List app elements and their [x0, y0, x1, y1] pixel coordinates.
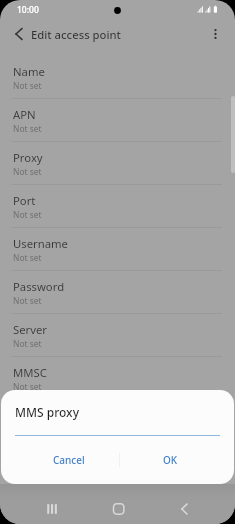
staticText: Cancel: [53, 453, 85, 467]
staticText: MMS proxy: [15, 404, 79, 420]
staticText: Not set: [13, 338, 42, 349]
staticText: Not set: [13, 166, 42, 177]
staticText: MMSC: [13, 365, 47, 380]
button[interactable]: Server: [0, 314, 235, 357]
button[interactable]: MMSC: [0, 357, 235, 400]
staticText: Not set: [13, 123, 42, 134]
staticText: Port: [13, 193, 36, 208]
staticText: Not set: [13, 295, 42, 306]
staticText: Not set: [13, 252, 42, 263]
button[interactable]: Port: [0, 185, 235, 228]
staticText: Not set: [13, 209, 42, 220]
button[interactable]: More options: [197, 20, 235, 48]
staticText: Password: [13, 279, 65, 294]
staticText: Name: [13, 64, 45, 79]
staticText: Proxy: [13, 150, 43, 165]
button[interactable]: Cancel: [18, 445, 119, 475]
button[interactable]: Password: [0, 271, 235, 314]
button[interactable]: Name: [0, 56, 235, 99]
button[interactable]: OK: [120, 445, 221, 475]
button[interactable]: Back: [167, 494, 203, 524]
staticText: Not set: [13, 80, 42, 91]
staticText: APN: [13, 107, 36, 122]
button[interactable]: Recent apps: [32, 494, 68, 524]
button[interactable]: Home: [100, 494, 136, 524]
staticText: Not set: [13, 381, 42, 392]
staticText: Server: [13, 322, 48, 337]
button[interactable]: APN: [0, 99, 235, 142]
staticText: OK: [163, 453, 178, 467]
button[interactable]: Proxy: [0, 142, 235, 185]
button[interactable]: Navigate up: [0, 20, 38, 48]
staticText: Username: [13, 236, 68, 251]
staticText: Edit access point: [31, 27, 121, 42]
button[interactable]: Username: [0, 228, 235, 271]
staticText: 10:00: [17, 4, 39, 16]
